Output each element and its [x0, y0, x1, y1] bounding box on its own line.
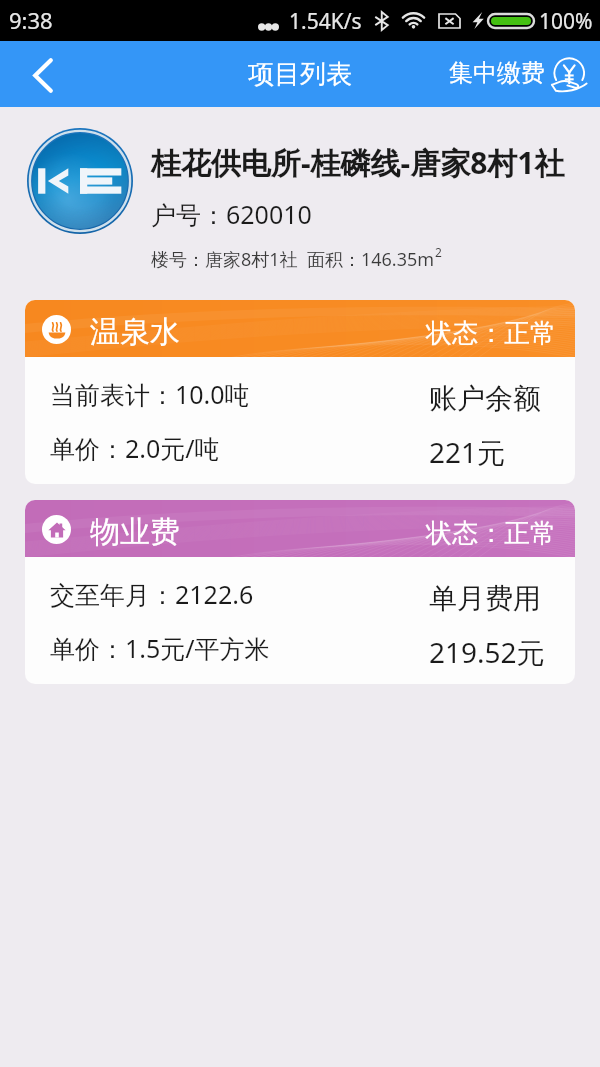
staticText: 状态：正常	[426, 517, 556, 550]
button[interactable]: 物业费	[25, 500, 575, 684]
staticText: 2	[435, 244, 442, 260]
staticText: 状态：正常	[426, 317, 556, 350]
staticText: 当前表计：10.0吨	[50, 377, 250, 411]
button[interactable]: 温泉水	[25, 300, 575, 484]
staticText: 100%	[539, 7, 593, 36]
staticText: 楼号：唐家8村1社 面积：146.35m	[151, 247, 435, 272]
staticText: 单价：2.0元/吨	[50, 431, 220, 465]
staticText: 219.52元	[429, 633, 545, 671]
staticText: 221元	[429, 433, 506, 471]
staticText: 单月费用	[429, 581, 541, 616]
staticText: 1.54K/s	[289, 7, 362, 36]
staticText: 物业费	[90, 513, 180, 551]
staticText: 账户余额	[429, 381, 541, 416]
button[interactable]: 集中缴费	[437, 51, 600, 97]
staticText: 集中缴费	[449, 58, 545, 88]
staticText: 交至年月：2122.6	[50, 577, 254, 611]
staticText: 户号：620010	[151, 197, 312, 231]
staticText: 温泉水	[90, 313, 180, 351]
staticText: 单价：1.5元/平方米	[50, 631, 270, 665]
staticText: 9:38	[9, 5, 53, 35]
button[interactable]: Back	[0, 41, 80, 107]
staticText: 项目列表	[248, 58, 352, 91]
staticText: 桂花供电所-桂磷线-唐家8村1社	[151, 142, 565, 183]
